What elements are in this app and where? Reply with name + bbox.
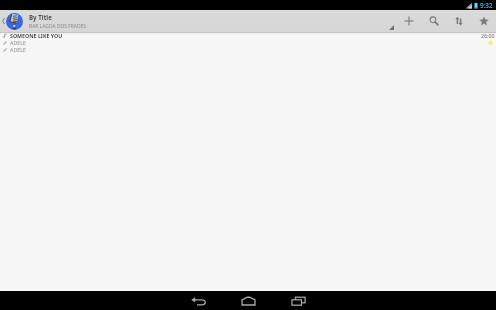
staticText: 26:00	[481, 32, 495, 39]
button[interactable]: SOMEONE LIKE YOU	[0, 32, 496, 39]
other: Navigate up	[0, 10, 6, 32]
button[interactable]: More options	[386, 10, 396, 32]
staticText: BAR LAGOA DOS FRADES	[29, 23, 86, 30]
staticText: By Title	[29, 13, 52, 21]
staticText: 9:32	[480, 1, 493, 10]
staticText: SOMEONE LIKE YOU	[10, 32, 63, 39]
button[interactable]: Favorite	[471, 10, 496, 32]
button[interactable]: Search	[421, 10, 446, 32]
button[interactable]: ADELE	[0, 46, 496, 53]
button[interactable]: Sort	[446, 10, 471, 32]
button[interactable]: Add	[396, 10, 421, 32]
button[interactable]: Home	[236, 291, 261, 310]
button[interactable]: Recents	[286, 291, 311, 310]
staticText: ADELE	[10, 39, 26, 46]
staticText: ADELE	[10, 46, 26, 53]
button[interactable]: Navigate up	[0, 10, 386, 32]
button[interactable]: Back	[186, 291, 211, 310]
button[interactable]: ADELE	[0, 39, 496, 46]
